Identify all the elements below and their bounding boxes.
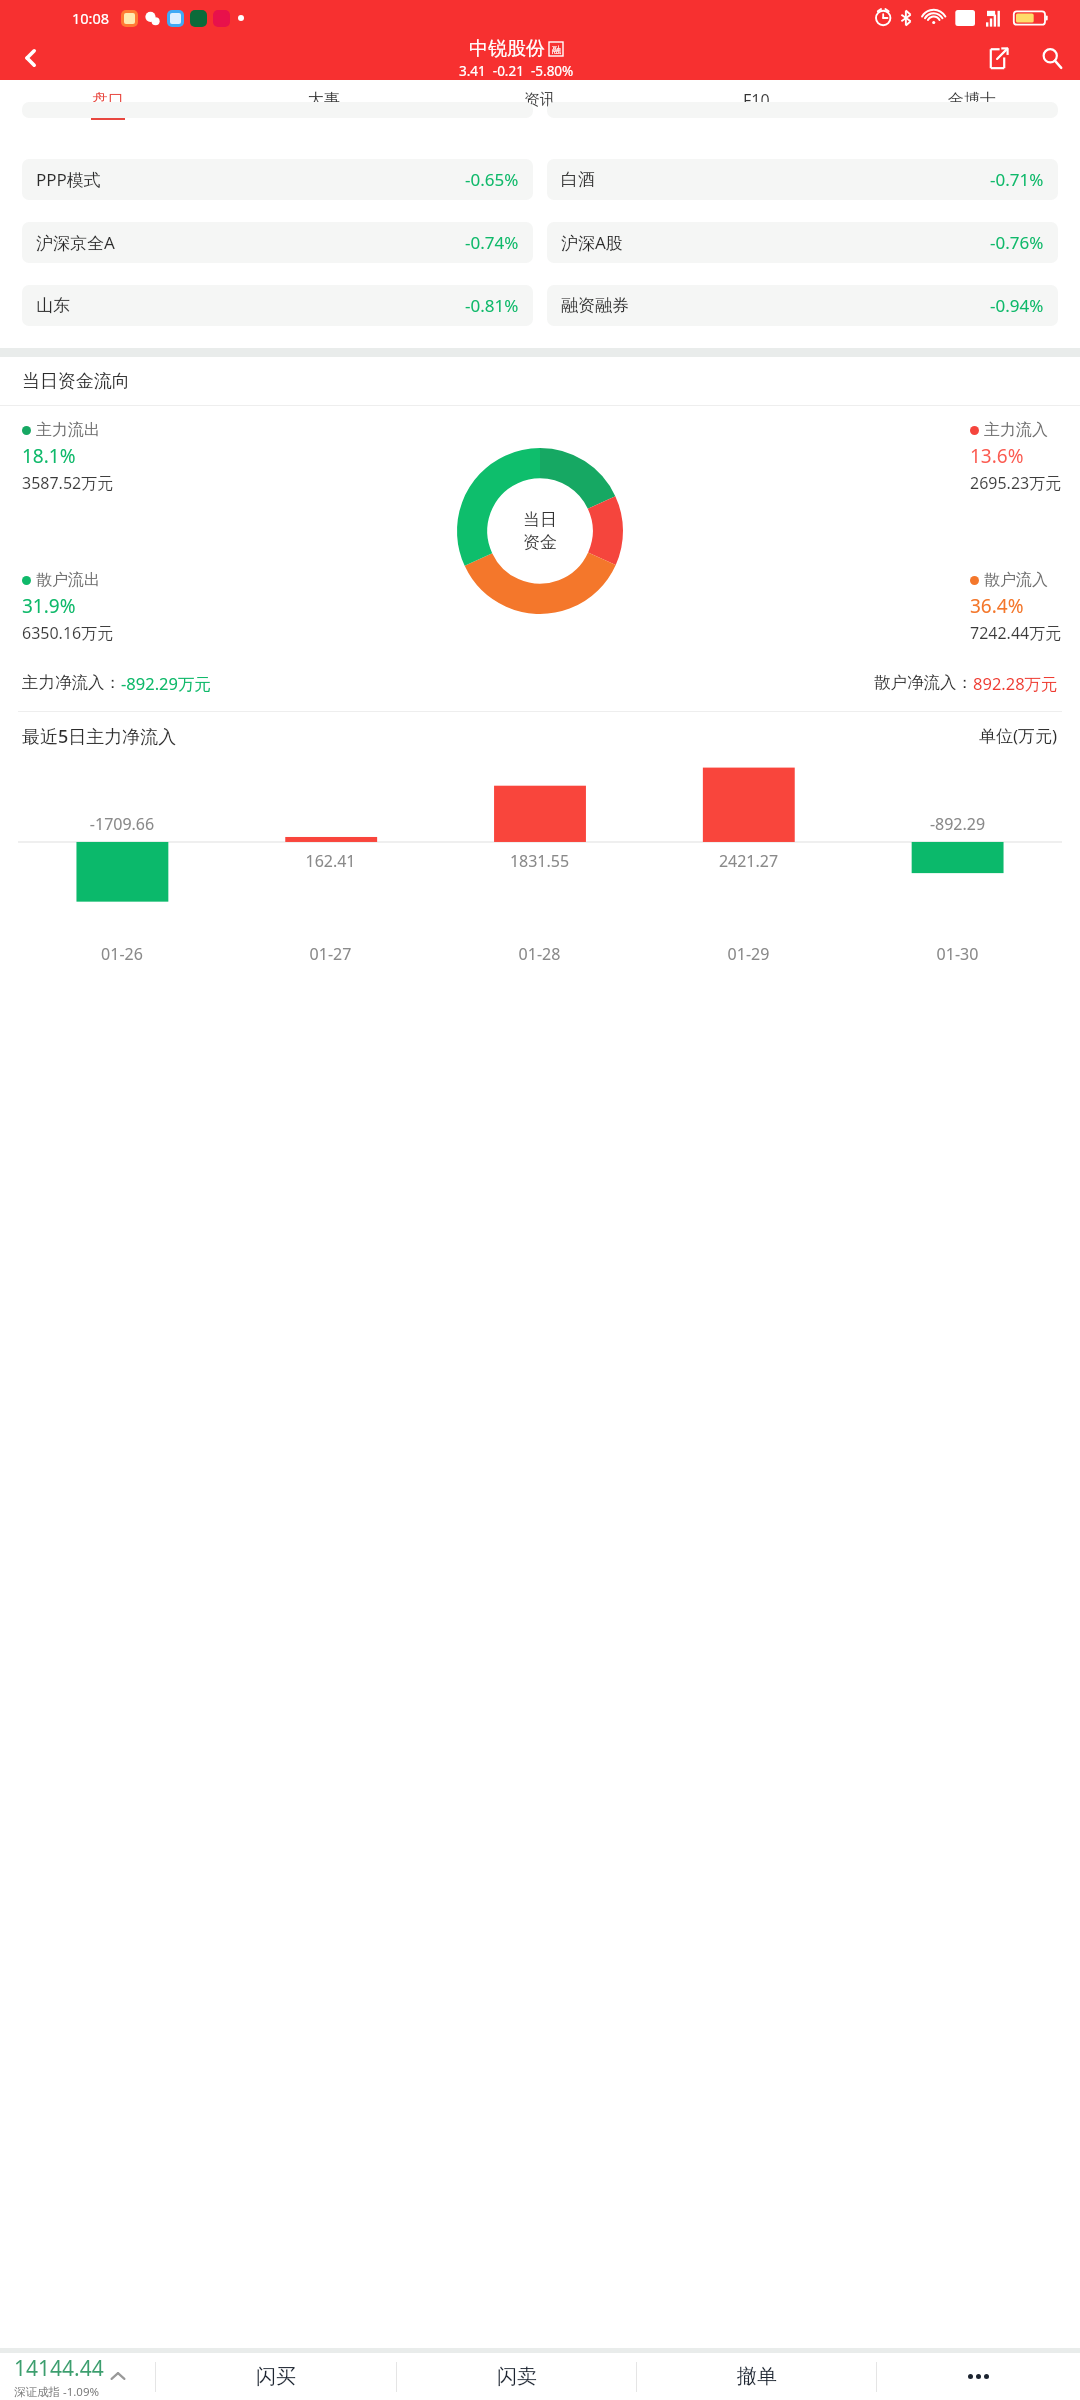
staticText: 01-28 (435, 943, 644, 965)
staticText: 01-29 (644, 943, 853, 965)
staticText: 主力流出 (36, 420, 100, 440)
staticText: 金博士 (948, 90, 996, 110)
button[interactable]: PPP模式 (22, 159, 533, 200)
button[interactable]: 沪深A股 (547, 222, 1058, 263)
staticText: 162.41 (226, 850, 435, 872)
staticText: 10:08 (72, 8, 110, 28)
staticText: 白酒 (561, 169, 595, 190)
staticText: 最近5日主力净流入 (22, 724, 177, 749)
button[interactable]: 金博士 (864, 80, 1080, 126)
staticText: 盘口 (92, 90, 124, 110)
staticText: 36.4% (970, 593, 1024, 619)
button[interactable]: 白酒 (547, 159, 1058, 200)
staticText: 深证成指 -1.09% (14, 2384, 100, 2400)
staticText: -0.81% (465, 294, 519, 317)
staticText: 融 (552, 44, 561, 55)
staticText: 单位(万元) (979, 724, 1058, 747)
staticText: 散户净流入： (874, 672, 973, 693)
staticText: 892.28万元 (973, 672, 1058, 695)
staticText: 01-26 (18, 943, 226, 965)
button[interactable]: 资讯 (432, 80, 648, 126)
staticText: F10 (743, 89, 770, 111)
staticText: -0.71% (990, 168, 1044, 191)
staticText: 13.6% (970, 443, 1024, 469)
button[interactable]: 融资融券 (547, 285, 1058, 326)
staticText: 闪卖 (497, 2364, 537, 2389)
staticText: 融资融券 (561, 295, 629, 316)
staticText: -892.29万元 (121, 672, 211, 695)
staticText: 14144.44 (14, 2354, 104, 2383)
staticText: 3.41 -0.21 -5.80% (459, 62, 574, 80)
staticText: 沪深京全A (36, 231, 115, 254)
staticText: 01-27 (226, 943, 435, 965)
staticText: PPP模式 (36, 168, 101, 191)
button[interactable]: 盘口 (0, 80, 216, 126)
staticText: 沪深A股 (561, 231, 623, 254)
staticText: 3587.52万元 (22, 472, 114, 494)
staticText: 1831.55 (435, 850, 644, 872)
staticText: 山东 (36, 295, 70, 316)
button[interactable]: 大事 (216, 80, 432, 126)
staticText: -0.65% (465, 168, 519, 191)
button[interactable]: More (877, 2353, 1080, 2400)
button[interactable]: Share (970, 36, 1024, 80)
staticText: 31.9% (22, 593, 76, 619)
staticText: -0.76% (990, 231, 1044, 254)
staticText: 18.1% (22, 443, 76, 469)
staticText: -0.74% (465, 231, 519, 254)
staticText: 资讯 (524, 90, 556, 110)
staticText: 中锐股份 (469, 37, 545, 61)
staticText: 6350.16万元 (22, 622, 114, 644)
staticText: 散户流出 (36, 570, 100, 590)
staticText: 撤单 (737, 2364, 777, 2389)
staticText: 2695.23万元 (970, 472, 1062, 494)
button[interactable]: 闪卖 (397, 2353, 636, 2400)
button[interactable]: 撤单 (637, 2353, 876, 2400)
button[interactable]: Back (0, 36, 62, 80)
staticText: -892.29 (853, 813, 1062, 835)
staticText: -0.94% (990, 294, 1044, 317)
staticText: 闪买 (256, 2364, 296, 2389)
button[interactable]: 沪深京全A (22, 222, 533, 263)
button[interactable]: 闪买 (156, 2353, 396, 2400)
staticText: 大事 (308, 90, 340, 110)
staticText: 7242.44万元 (970, 622, 1062, 644)
staticText: 当日资金流向 (22, 370, 130, 393)
button[interactable]: 14144.44 (0, 2353, 155, 2400)
staticText: 01-30 (853, 943, 1062, 965)
button[interactable] (547, 102, 1058, 118)
staticText: 当日 (523, 509, 557, 530)
button[interactable]: F10 (648, 80, 864, 126)
staticText: -1709.66 (18, 813, 226, 835)
staticText: 散户流入 (984, 570, 1048, 590)
button[interactable]: 山东 (22, 285, 533, 326)
staticText: 主力净流入： (22, 672, 121, 693)
staticText: 2421.27 (644, 850, 853, 872)
staticText: 主力流入 (984, 420, 1048, 440)
staticText: 资金 (523, 532, 557, 553)
button[interactable]: Search (1024, 36, 1080, 80)
